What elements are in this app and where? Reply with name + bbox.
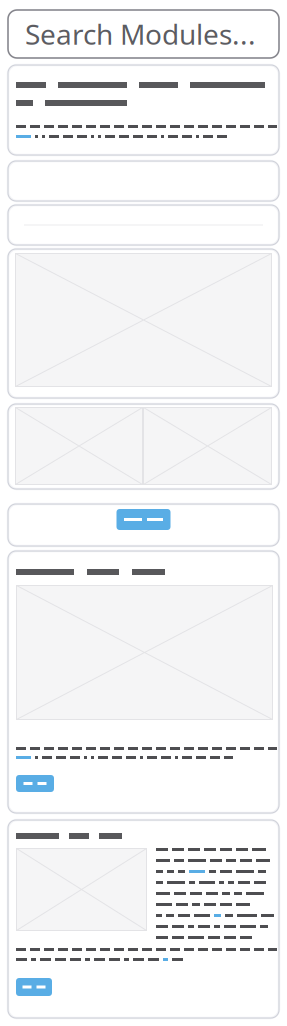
button[interactable]: Action — [116, 509, 170, 530]
button[interactable]: Action — [16, 978, 52, 996]
button[interactable]: Action — [16, 775, 54, 792]
staticText: Search Modules... — [25, 15, 256, 53]
button[interactable]: Search Modules... — [8, 10, 279, 58]
